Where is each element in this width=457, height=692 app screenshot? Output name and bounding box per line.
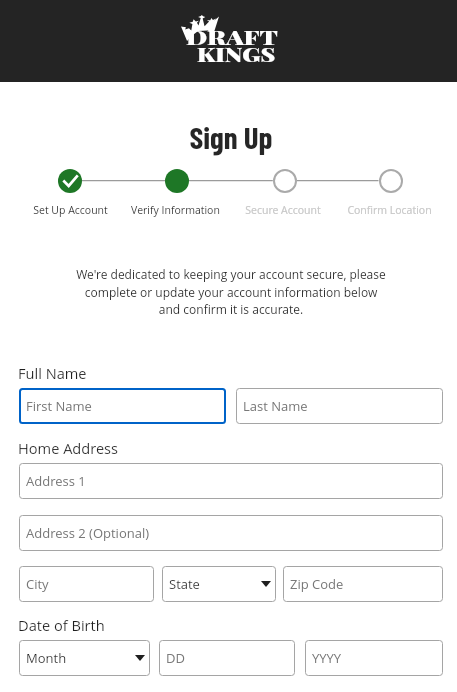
button[interactable]: Last Name <box>236 388 443 424</box>
staticText: YYYY <box>312 649 342 667</box>
button[interactable]: State <box>162 566 276 602</box>
button[interactable]: City <box>19 566 154 602</box>
button[interactable]: DD <box>159 640 295 676</box>
button[interactable]: Secure Account <box>273 169 297 193</box>
button[interactable]: Set Up Account <box>20 203 120 217</box>
staticText: Full Name <box>18 363 87 383</box>
staticText: Last Name <box>243 397 308 415</box>
button[interactable]: Confirm Location <box>379 169 403 193</box>
button[interactable]: Zip Code <box>283 566 443 602</box>
staticText: DD <box>166 649 185 667</box>
staticText: Address 2 (Optional) <box>26 524 150 542</box>
button[interactable]: Confirm Location <box>339 203 439 217</box>
staticText: Confirm Location <box>347 203 432 217</box>
staticText: Zip Code <box>290 575 344 593</box>
staticText: We're dedicated to keeping your account … <box>19 266 443 317</box>
staticText: Date of Birth <box>18 615 105 635</box>
button[interactable]: Month <box>19 640 150 676</box>
staticText: Secure Account <box>245 203 321 217</box>
button[interactable]: Verify Information <box>125 203 225 217</box>
button[interactable]: Verify Information <box>165 169 189 193</box>
other: DraftKings <box>174 12 284 70</box>
staticText: Sign Up <box>19 118 443 155</box>
staticText: DRAFT <box>186 24 278 49</box>
staticText: Set Up Account <box>33 203 108 217</box>
button[interactable]: Secure Account <box>233 203 333 217</box>
staticText: City <box>26 575 49 593</box>
button[interactable]: First Name <box>19 388 226 424</box>
staticText: Verify Information <box>131 203 220 217</box>
button[interactable]: Address 1 <box>19 463 443 499</box>
staticText: Home Address <box>18 438 119 458</box>
button[interactable]: Address 2 (Optional) <box>19 515 443 551</box>
staticText: First Name <box>26 397 92 415</box>
staticText: Address 1 <box>26 472 86 490</box>
staticText: State <box>169 575 200 593</box>
button[interactable]: Set Up Account <box>58 169 82 193</box>
staticText: KINGS <box>197 41 276 65</box>
staticText: Month <box>26 649 67 667</box>
button[interactable]: YYYY <box>305 640 443 676</box>
